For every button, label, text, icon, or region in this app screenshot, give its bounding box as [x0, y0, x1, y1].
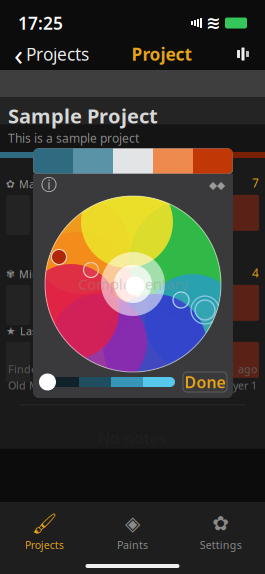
button[interactable]: ◈	[88, 508, 177, 556]
staticText: ◆◆	[209, 179, 225, 191]
button[interactable]: 🖌	[0, 508, 88, 556]
staticText: Paints	[117, 538, 148, 552]
staticText: Complementary	[78, 274, 188, 294]
staticText: Settings	[200, 538, 242, 552]
staticText: Finde…	[8, 362, 45, 376]
staticText: Mai	[19, 177, 38, 191]
staticText: ◈	[125, 512, 140, 535]
button[interactable]: Info	[37, 171, 61, 199]
staticText: 17:25	[18, 11, 63, 34]
staticText: ✾	[6, 268, 15, 280]
button[interactable]: ‹	[6, 28, 97, 79]
staticText: ✿	[6, 178, 15, 190]
staticText: 🖌	[32, 512, 57, 535]
staticText: Project	[131, 42, 192, 65]
button[interactable]: Swap colors	[205, 175, 229, 195]
staticText: Sample Project	[8, 102, 158, 129]
staticText: Old Metal	[8, 378, 58, 392]
staticText: 7	[252, 175, 259, 191]
button[interactable]: Statistics	[227, 39, 259, 68]
staticText: ≋	[206, 13, 221, 33]
staticText: ⓘ	[41, 175, 57, 195]
button[interactable]: Done	[183, 372, 227, 392]
staticText: 4	[252, 265, 259, 281]
staticText: Las	[20, 324, 37, 338]
staticText: Projects	[26, 42, 89, 65]
button[interactable]: ✿	[177, 508, 265, 556]
staticText: Done	[184, 371, 225, 393]
staticText: Layer 1	[221, 378, 257, 392]
staticText: ★	[6, 325, 16, 337]
staticText: Mir	[19, 267, 36, 281]
staticText: ✿	[212, 512, 229, 535]
staticText: ago	[238, 362, 257, 376]
staticText: ‹	[14, 34, 23, 73]
staticText: Projects	[25, 538, 64, 552]
staticText: This is a sample project	[8, 130, 139, 146]
